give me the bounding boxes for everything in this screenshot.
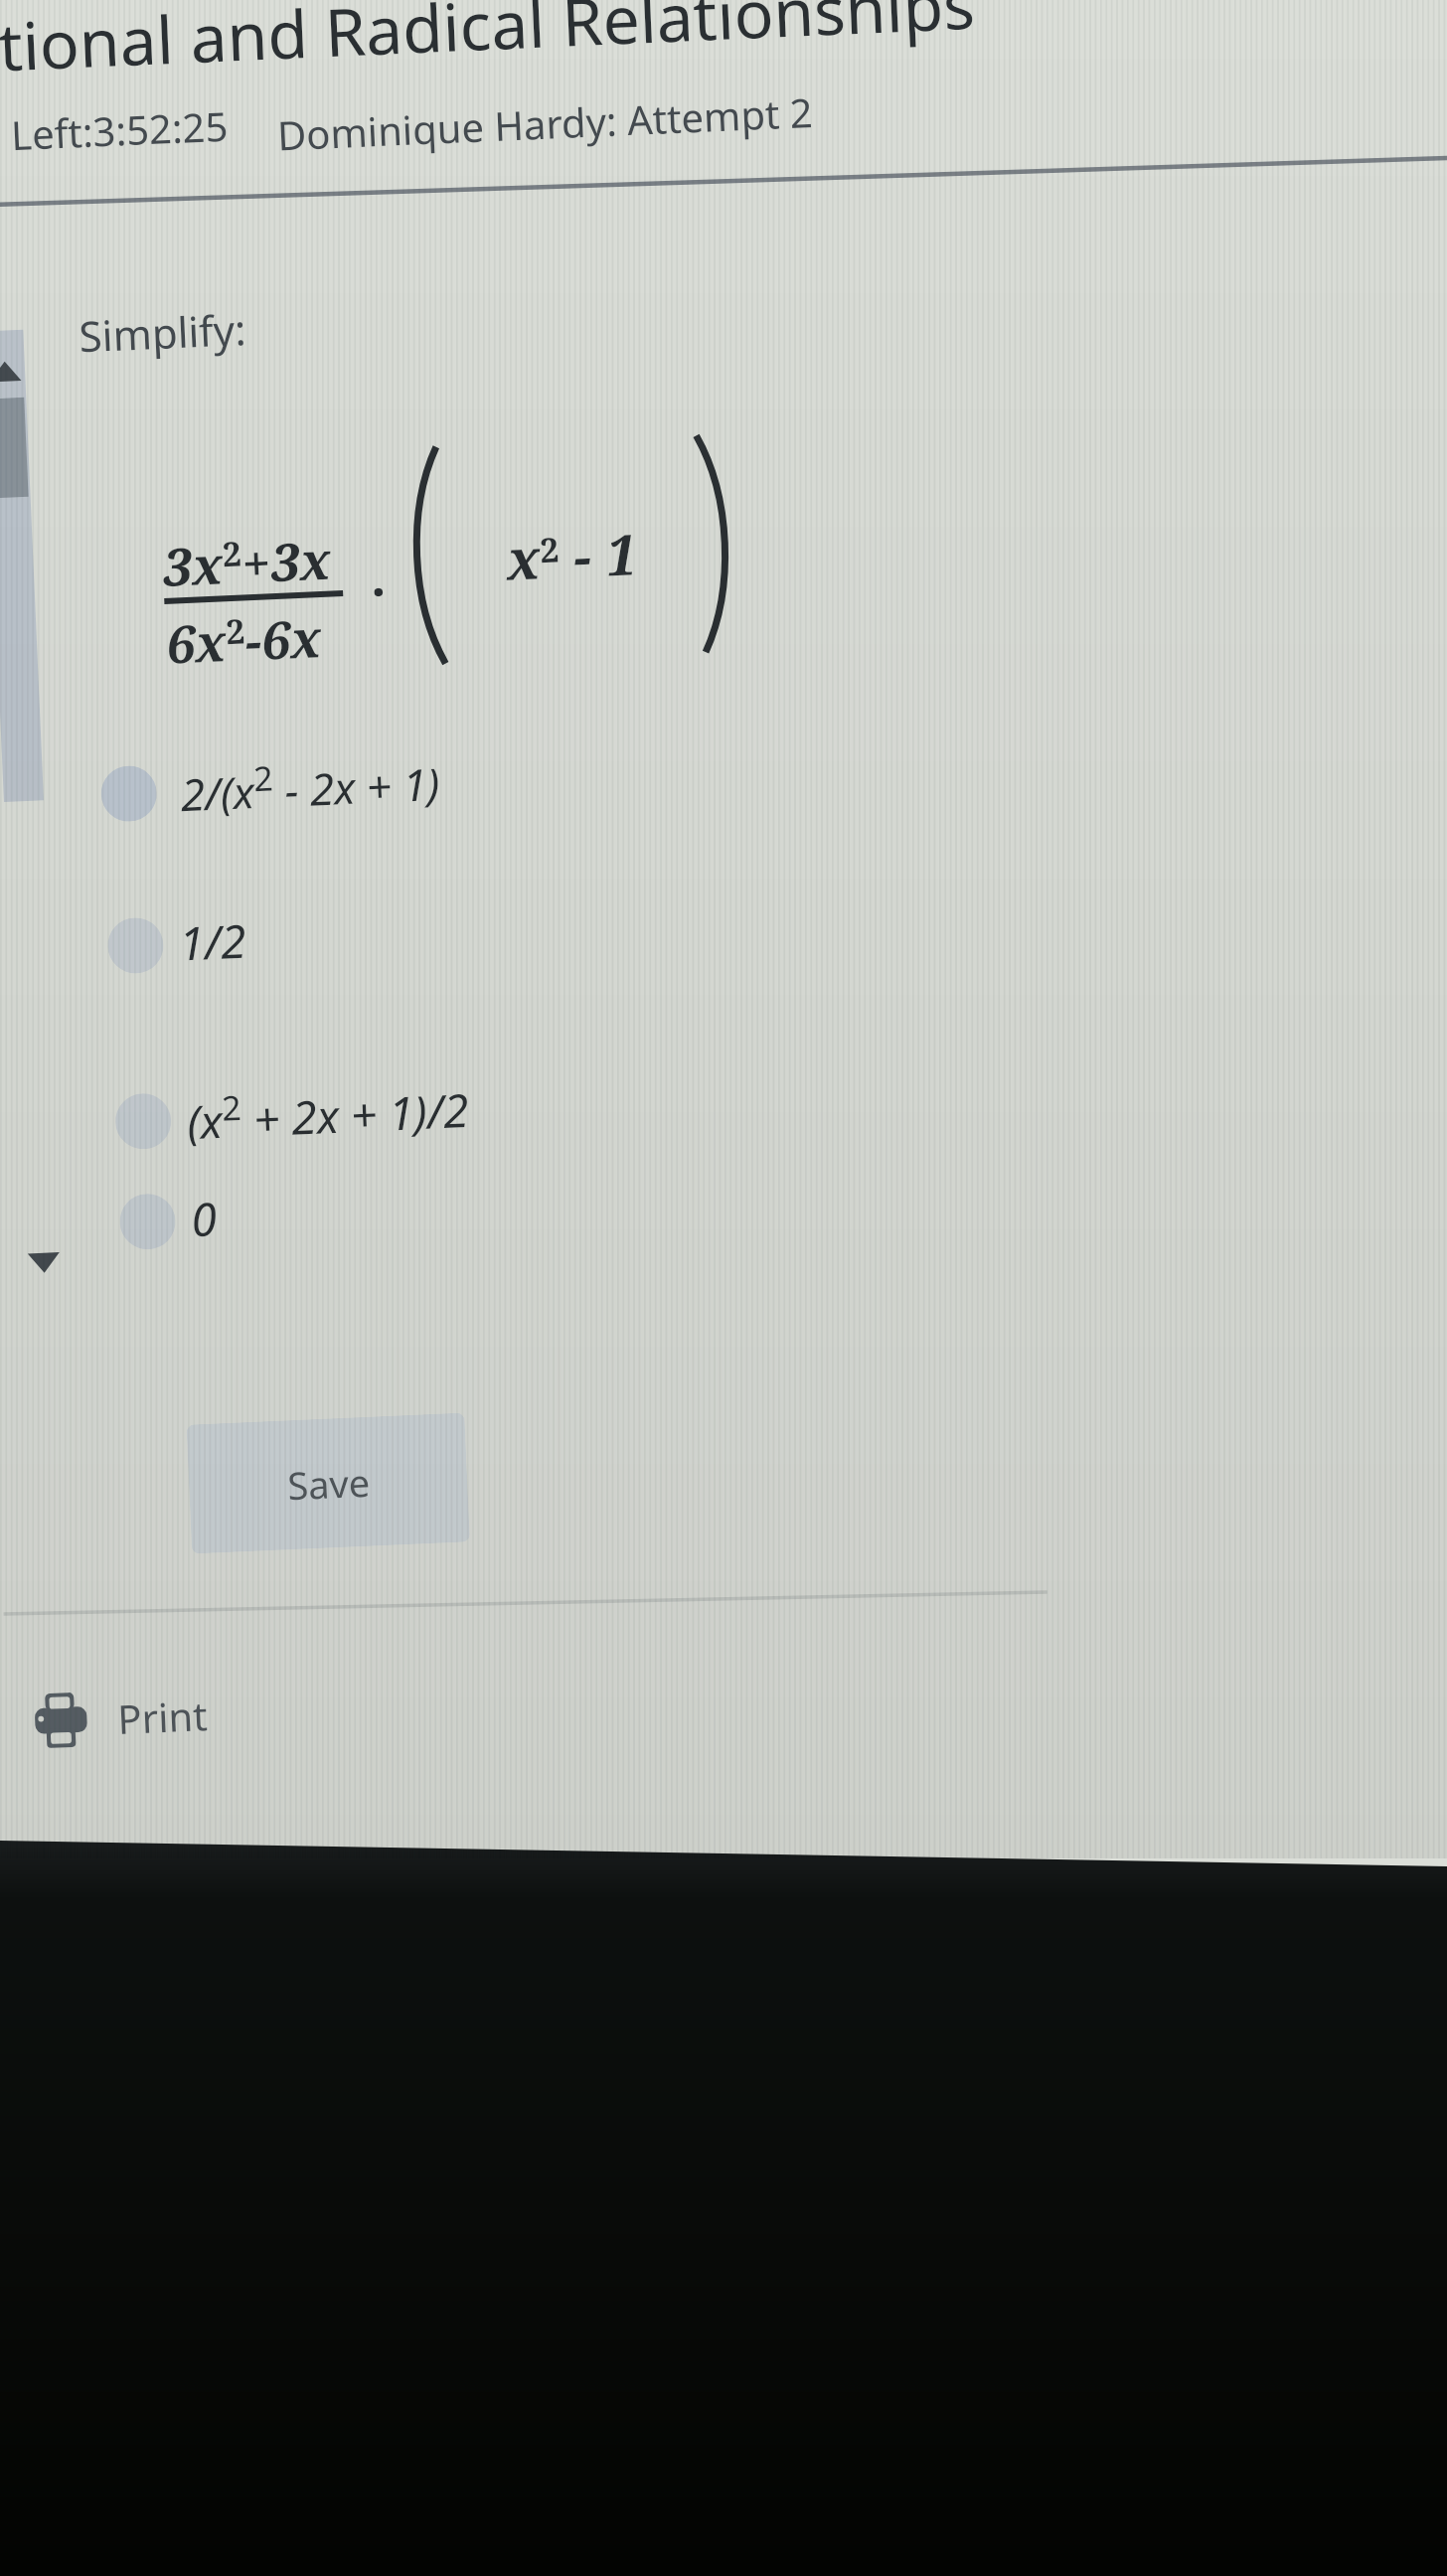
- staticText: Simplify:: [78, 300, 247, 364]
- staticText: me Left:3:52:25: [0, 98, 229, 164]
- button[interactable]: Save: [186, 1413, 470, 1554]
- button[interactable]: Print: [31, 1687, 209, 1750]
- button[interactable]: 0: [118, 1187, 219, 1254]
- button[interactable]: Scroll down: [21, 1247, 66, 1277]
- other: Print: [31, 1692, 91, 1750]
- staticText: Dominique Hardy: Attempt 2: [276, 84, 815, 161]
- staticText: 0: [190, 1187, 218, 1251]
- staticText: 2/(x2 - 2x + 1): [179, 747, 441, 824]
- staticText: Rational and Radical Relationships: [0, 0, 977, 93]
- button[interactable]: (x2 + 2x + 1)/2: [114, 1074, 470, 1155]
- staticText: Save: [286, 1456, 371, 1511]
- staticText: x2 − 1: [505, 515, 638, 596]
- staticText: 3x2+3x: [161, 523, 333, 601]
- button[interactable]: Scroll up: [0, 357, 28, 387]
- staticText: Print: [116, 1688, 209, 1745]
- button[interactable]: 2/(x2 - 2x + 1): [100, 747, 441, 828]
- staticText: 1/2: [178, 909, 248, 974]
- button[interactable]: 1/2: [106, 909, 248, 978]
- staticText: 6x2−6x: [165, 601, 323, 679]
- staticText: (x2 + 2x + 1)/2: [185, 1074, 470, 1152]
- staticText: ·: [369, 555, 388, 626]
